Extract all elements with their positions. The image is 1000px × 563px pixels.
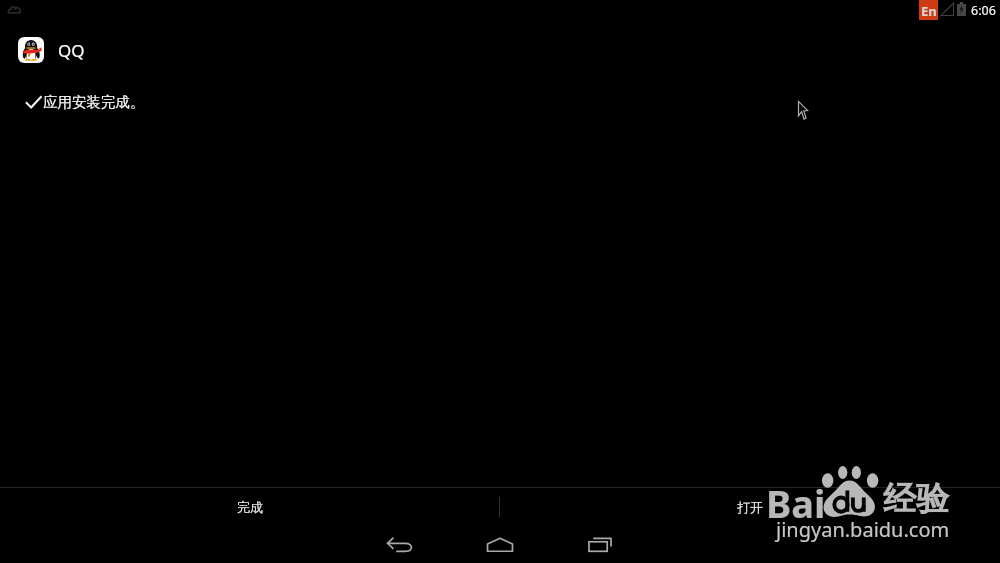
staticText: En — [921, 2, 937, 20]
staticText: 打开 — [737, 499, 763, 515]
button[interactable]: Home — [470, 525, 530, 563]
button[interactable]: 打开 — [500, 488, 1000, 525]
staticText: 应用安装完成。 — [43, 93, 145, 111]
button[interactable]: Back — [370, 525, 430, 563]
staticText: 完成 — [237, 499, 263, 515]
staticText: 6:06 — [971, 2, 996, 19]
staticText: 经验 — [883, 478, 949, 520]
staticText: jingyan.baidu.com — [776, 516, 950, 543]
staticText: Bai — [766, 477, 826, 529]
staticText: QQ — [58, 39, 85, 62]
button[interactable]: Recent apps — [570, 525, 630, 563]
button[interactable]: 完成 — [0, 488, 499, 525]
